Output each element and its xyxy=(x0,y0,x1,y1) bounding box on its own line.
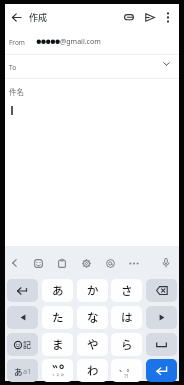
button[interactable] xyxy=(42,359,73,382)
button[interactable] xyxy=(103,255,117,271)
button[interactable] xyxy=(127,255,141,271)
staticText: From xyxy=(9,38,25,47)
staticText: ?! xyxy=(124,372,129,380)
staticText: 、。 xyxy=(119,362,134,373)
staticText: ま xyxy=(52,336,64,353)
staticText: わ xyxy=(87,362,99,379)
button[interactable]: ら xyxy=(111,333,142,356)
button[interactable] xyxy=(146,333,177,356)
staticText: や xyxy=(87,336,99,353)
button[interactable]: さ xyxy=(111,279,142,302)
button[interactable]: 件名 xyxy=(5,79,179,103)
staticText: あ xyxy=(52,282,64,299)
button[interactable] xyxy=(8,9,24,25)
staticText: a1 xyxy=(23,366,32,376)
button[interactable] xyxy=(160,9,175,25)
button[interactable]: 記 xyxy=(7,333,38,356)
button[interactable]: わ xyxy=(77,359,108,382)
button[interactable] xyxy=(121,9,137,25)
staticText: は xyxy=(121,309,133,326)
button[interactable]: た xyxy=(42,306,73,329)
button[interactable] xyxy=(31,255,45,271)
staticText: To xyxy=(9,63,17,72)
button[interactable]: や xyxy=(77,333,108,356)
staticText: 作成 xyxy=(29,11,48,24)
button[interactable] xyxy=(7,279,38,302)
button[interactable]: な xyxy=(77,306,108,329)
button[interactable] xyxy=(146,306,177,329)
button[interactable] xyxy=(7,306,38,329)
button[interactable]: あ xyxy=(7,359,38,382)
staticText: @gmail.com xyxy=(60,37,101,47)
staticText: あ xyxy=(14,365,23,377)
button[interactable] xyxy=(79,255,93,271)
button[interactable]: あ xyxy=(42,279,73,302)
button[interactable]: From xyxy=(5,28,179,54)
button[interactable] xyxy=(146,359,177,382)
staticText: 記 xyxy=(23,339,31,351)
button[interactable]: ま xyxy=(42,333,73,356)
button[interactable] xyxy=(158,255,174,271)
button[interactable]: か xyxy=(77,279,108,302)
staticText: 件名 xyxy=(9,86,24,97)
button[interactable]: 、。 xyxy=(111,359,142,382)
staticText: か xyxy=(87,282,99,299)
button[interactable] xyxy=(146,279,177,302)
button[interactable]: To xyxy=(5,55,179,78)
staticText: ら xyxy=(121,336,133,353)
button[interactable] xyxy=(7,255,21,271)
button[interactable] xyxy=(55,255,69,271)
staticText: な xyxy=(87,309,99,326)
staticText: さ xyxy=(121,282,133,299)
staticText: た xyxy=(52,309,64,326)
button[interactable] xyxy=(142,9,158,25)
button[interactable]: は xyxy=(111,306,142,329)
